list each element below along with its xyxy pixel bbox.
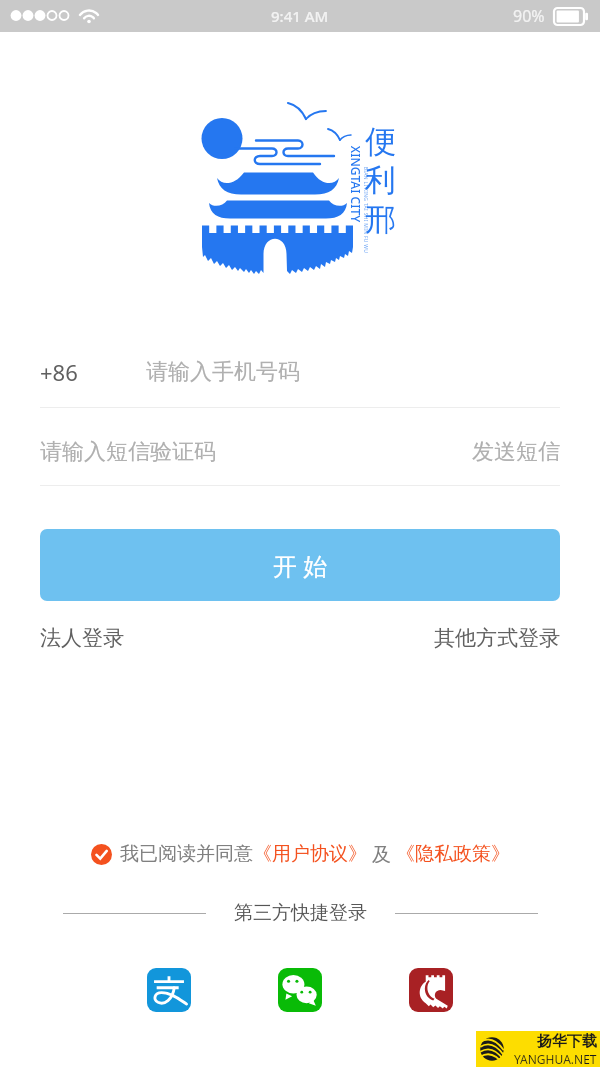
button[interactable]: 开 始 [40, 529, 560, 601]
button[interactable]: 发送短信 [472, 438, 560, 466]
staticText: 邢 [365, 200, 396, 239]
staticText: 利 [365, 161, 396, 200]
button[interactable]: 其他方式登录 [434, 625, 560, 651]
staticText: 《隐私政策》 [396, 842, 510, 866]
staticText: BIAN LI XING TAI SHI MIN FU WU PING TAI [361, 160, 369, 260]
button[interactable]: Government login [409, 968, 453, 1012]
staticText: +86 [40, 357, 78, 387]
staticText: 请输入手机号码 [146, 358, 300, 386]
staticText: 扬华下载 [537, 1032, 597, 1051]
staticText: 我已阅读并同意 [120, 842, 253, 866]
button[interactable]: WeChat login [278, 968, 322, 1012]
button[interactable]: +86 [40, 337, 560, 407]
staticText: 其他方式登录 [434, 625, 560, 651]
staticText: 第三方快捷登录 [234, 901, 367, 925]
button[interactable]: 请输入短信验证码 [40, 438, 472, 466]
staticText: 《用户协议》 [253, 842, 367, 866]
button[interactable]: 我已阅读并同意 [0, 841, 600, 867]
staticText: 及 [367, 841, 396, 867]
staticText: 请输入短信验证码 [40, 438, 216, 466]
staticText: 开 始 [273, 549, 328, 582]
button[interactable]: Alipay login [147, 968, 191, 1012]
staticText: 发送短信 [472, 438, 560, 466]
staticText: 90% [513, 5, 545, 27]
button[interactable]: 法人登录 [40, 625, 124, 651]
staticText: YANGHUA.NET [514, 1051, 597, 1067]
staticText: 9:41 AM [271, 6, 329, 26]
staticText: XINGTAI CITY [350, 139, 364, 229]
staticText: 法人登录 [40, 625, 124, 651]
staticText: 便 [365, 122, 396, 161]
